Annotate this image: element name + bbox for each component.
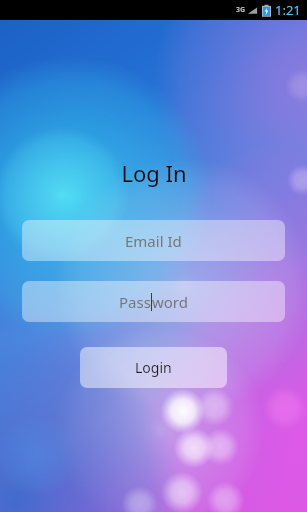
staticText: Pass [119, 292, 151, 312]
button[interactable]: Email Id [22, 220, 285, 261]
other: Battery charging [262, 4, 271, 17]
button[interactable]: Pass [22, 281, 285, 322]
staticText: word [152, 292, 188, 312]
button[interactable]: Login [80, 347, 227, 388]
other: Signal strength [247, 5, 258, 16]
staticText: Email Id [125, 231, 182, 251]
staticText: 3G [236, 5, 246, 15]
staticText: Log In [121, 158, 187, 188]
staticText: Login [135, 358, 172, 377]
staticText: 1:21 [275, 1, 301, 19]
